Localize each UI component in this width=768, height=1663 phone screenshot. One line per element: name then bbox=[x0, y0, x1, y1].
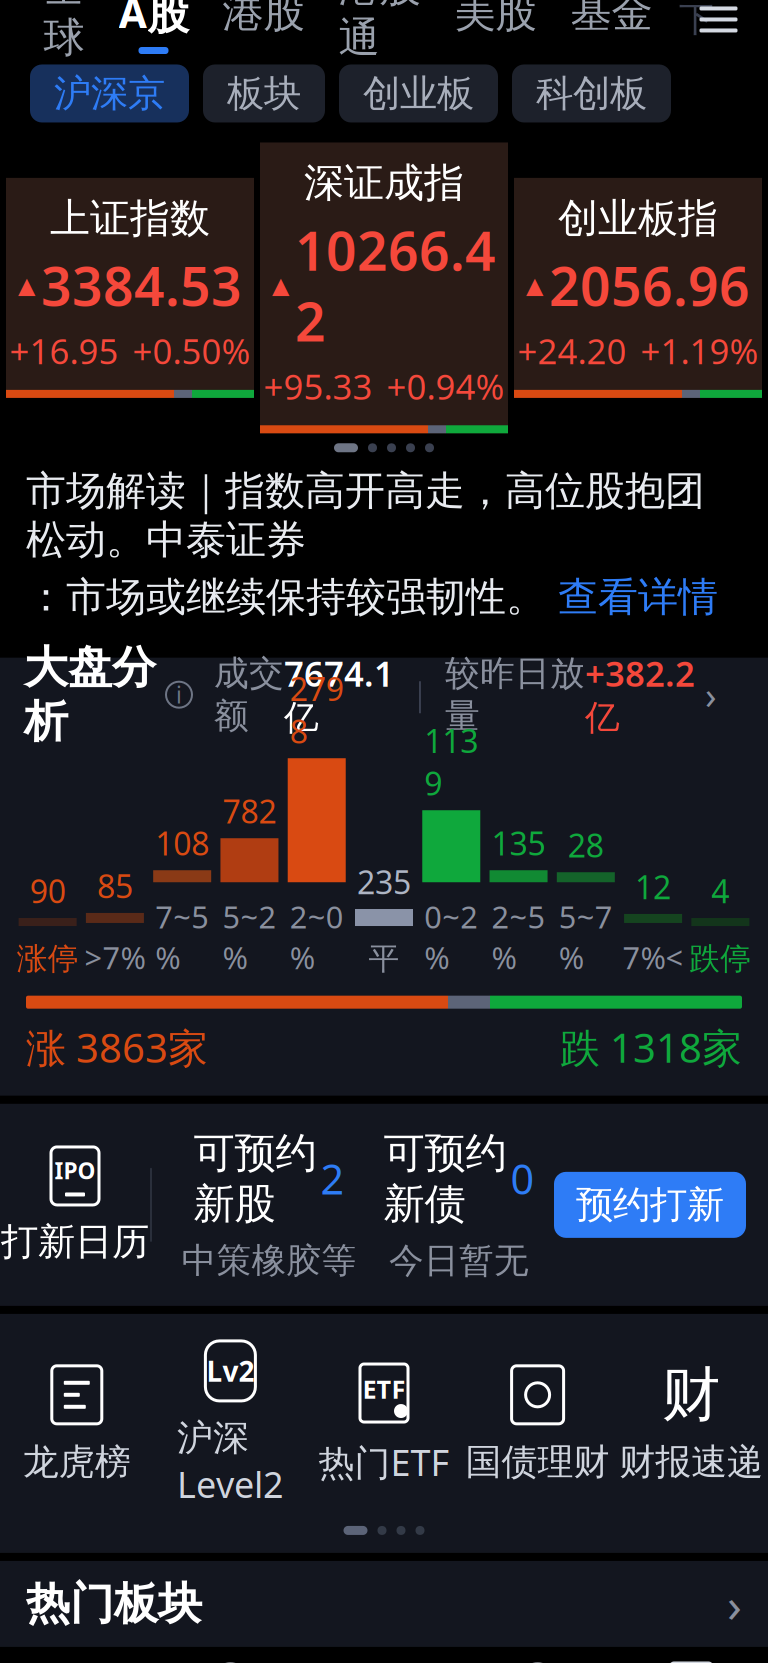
staticText: 港股通 bbox=[338, 0, 420, 63]
staticText: i bbox=[176, 680, 182, 710]
button[interactable]: 可预约新债 bbox=[364, 1128, 554, 1282]
button[interactable]: 财 bbox=[614, 1364, 768, 1484]
button[interactable]: 基金 bbox=[553, 0, 669, 50]
staticText: 基金 bbox=[570, 0, 652, 38]
staticText: 热门ETF bbox=[318, 1438, 449, 1486]
staticText: ：市场或继续保持较强韧性。 bbox=[26, 573, 558, 622]
staticText: 市场解读｜指数高开高走，高位股抱团松动。中泰证券 bbox=[26, 466, 705, 565]
staticText: 90 bbox=[30, 869, 66, 912]
button[interactable]: 可预约新股 bbox=[152, 1128, 364, 1282]
button[interactable]: 市场解读｜指数高开高走，高位股抱团松动。中泰证券 bbox=[0, 466, 768, 644]
staticText: +1.19% bbox=[640, 328, 758, 374]
staticText: 创业板 bbox=[363, 70, 474, 116]
staticText: 上证指数 bbox=[50, 194, 210, 243]
staticText: 美股 bbox=[454, 0, 536, 38]
staticText: 3384.53 bbox=[41, 250, 242, 321]
button[interactable]: ETF bbox=[614, 1661, 768, 1663]
button[interactable]: 更多分类 bbox=[669, 0, 749, 47]
staticText: 科创板 bbox=[536, 70, 647, 116]
staticText: 7%< bbox=[623, 937, 684, 978]
staticText: 成交额 bbox=[214, 652, 284, 737]
staticText: 4 bbox=[711, 869, 729, 912]
button[interactable]: IPO bbox=[0, 1145, 150, 1265]
staticText: 涨停 bbox=[17, 940, 79, 978]
staticText: 财报速递 bbox=[619, 1440, 763, 1484]
staticText: 今日暂无 bbox=[389, 1239, 529, 1282]
button[interactable]: ETF bbox=[307, 1362, 461, 1486]
staticText: 沪深Level2 bbox=[177, 1416, 284, 1508]
staticText: 28 bbox=[568, 824, 604, 866]
staticText: 7~5% bbox=[155, 896, 209, 978]
staticText: 跌 1318家 bbox=[560, 1021, 742, 1074]
button[interactable]: 热门板块 bbox=[0, 1561, 768, 1647]
button[interactable]: 港股通 bbox=[321, 0, 437, 50]
button[interactable]: 创业板指 bbox=[514, 178, 762, 398]
button[interactable]: 交易 bbox=[461, 1661, 614, 1663]
staticText: +0.94% bbox=[386, 363, 504, 409]
button[interactable]: 港股 bbox=[205, 0, 321, 50]
staticText: +95.33 bbox=[263, 363, 372, 409]
staticText: 深证成指 bbox=[304, 158, 464, 208]
staticText: +16.95 bbox=[9, 328, 118, 374]
staticText: ▲ bbox=[18, 273, 35, 298]
button[interactable]: 科创板 bbox=[512, 64, 671, 122]
staticText: 查看详情 bbox=[558, 573, 718, 622]
staticText: 板块 bbox=[227, 70, 301, 116]
staticText: 港股 bbox=[222, 0, 304, 38]
staticText: 热门板块 bbox=[26, 1577, 202, 1631]
button[interactable]: 龙虎榜 bbox=[0, 1364, 154, 1484]
button[interactable]: A股 bbox=[101, 0, 205, 50]
staticText: 预约打新 bbox=[576, 1182, 724, 1228]
staticText: ｜ bbox=[394, 675, 445, 714]
button[interactable]: Lv2 bbox=[154, 1340, 307, 1508]
staticText: 235 bbox=[357, 860, 411, 903]
staticText: 2~5% bbox=[491, 896, 545, 978]
staticText: 12 bbox=[635, 865, 671, 908]
staticText: 2~0% bbox=[290, 896, 344, 978]
staticText: 2 bbox=[320, 1151, 344, 1206]
staticText: Lv2 bbox=[206, 1352, 254, 1389]
staticText: 国债理财 bbox=[466, 1440, 610, 1484]
button[interactable]: 全球 bbox=[26, 0, 101, 50]
button[interactable]: 美股 bbox=[437, 0, 553, 50]
button[interactable]: ↗ bbox=[154, 1661, 307, 1663]
staticText: 2798 bbox=[290, 667, 344, 752]
button[interactable]: 预约打新 bbox=[554, 1172, 746, 1238]
staticText: 中策橡胶等 bbox=[181, 1239, 356, 1282]
staticText: 涨 3863家 bbox=[26, 1021, 208, 1074]
staticText: ETF bbox=[362, 1372, 405, 1406]
staticText: 5~2% bbox=[222, 896, 276, 978]
staticText: 0~2% bbox=[424, 896, 478, 978]
staticText: 平 bbox=[368, 940, 399, 978]
staticText: +24.20 bbox=[517, 328, 626, 374]
staticText: 跌停 bbox=[689, 940, 751, 978]
button[interactable]: 板块 bbox=[203, 64, 325, 122]
staticText: 1139 bbox=[424, 719, 478, 804]
staticText: >7% bbox=[84, 937, 145, 978]
staticText: › bbox=[727, 1572, 742, 1636]
staticText: 较昨日放量 bbox=[445, 652, 585, 737]
staticText: 下 bbox=[679, 0, 714, 41]
staticText: 135 bbox=[491, 822, 545, 864]
staticText: +382.2亿 bbox=[585, 650, 695, 739]
button[interactable]: 上证指数 bbox=[6, 178, 254, 398]
staticText: 龙虎榜 bbox=[23, 1440, 131, 1484]
staticText: 5~7% bbox=[559, 896, 613, 978]
staticText: ▲ bbox=[526, 273, 543, 298]
staticText: › bbox=[695, 670, 717, 719]
staticText: 打新日历 bbox=[1, 1219, 149, 1265]
staticText: 7674.1亿 bbox=[284, 650, 394, 739]
staticText: ▲ bbox=[272, 273, 289, 298]
staticText: 85 bbox=[97, 864, 133, 907]
button[interactable]: 深证成指 bbox=[260, 142, 508, 433]
staticText: 大盘分析 bbox=[24, 641, 156, 749]
button[interactable]: 创业板 bbox=[339, 64, 498, 122]
staticText: 108 bbox=[155, 822, 209, 864]
staticText: 可预约新债 bbox=[383, 1128, 506, 1229]
button[interactable]: 大盘分析 bbox=[0, 658, 768, 732]
button[interactable]: 沪深京 bbox=[30, 64, 189, 122]
button[interactable]: 国债理财 bbox=[461, 1364, 614, 1484]
